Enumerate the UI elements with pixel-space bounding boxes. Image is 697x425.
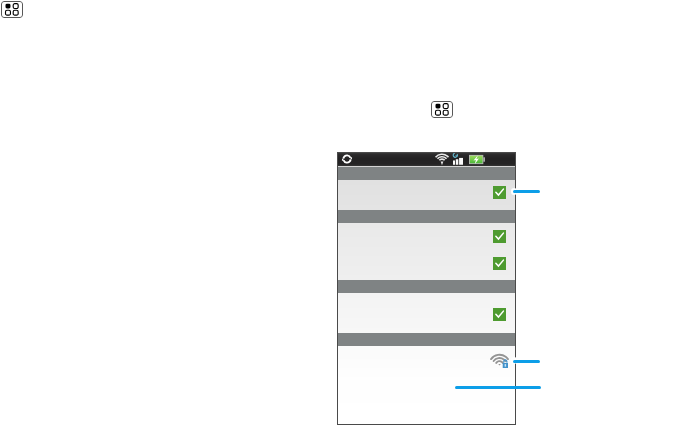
button[interactable]: Apps <box>431 101 453 118</box>
button[interactable]: Setting 2, enabled <box>337 223 516 251</box>
button[interactable]: Secure Wi-Fi network <box>492 353 508 368</box>
button[interactable]: Setting 4, enabled <box>337 293 516 333</box>
button[interactable]: Apps <box>1 1 23 18</box>
button[interactable]: Setting 3, enabled <box>337 251 516 280</box>
button[interactable]: Setting 1, enabled <box>337 180 516 210</box>
